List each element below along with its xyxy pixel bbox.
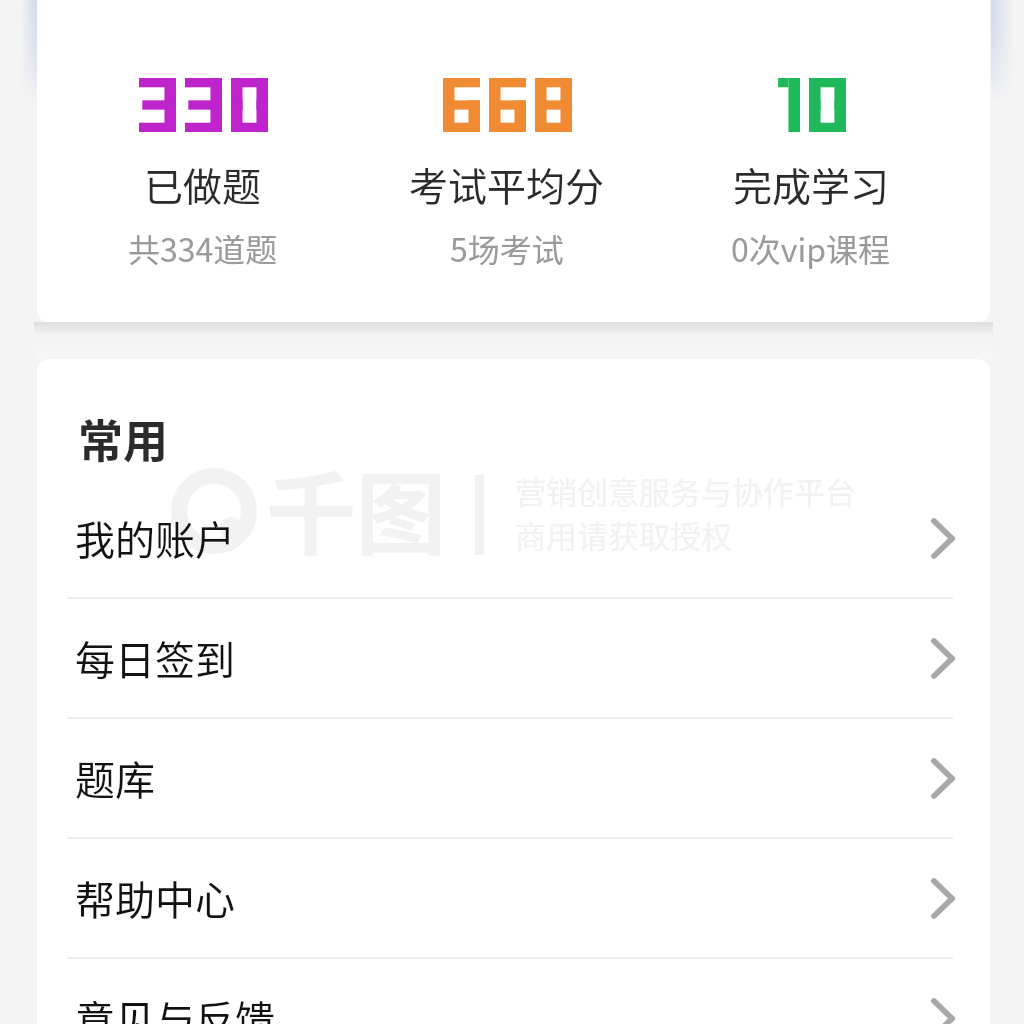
staticText: 题库	[75, 749, 155, 807]
staticText: 0次vip课程	[731, 225, 891, 271]
staticText: 商用请获取授权	[515, 512, 732, 557]
button[interactable]: 每日签到	[37, 599, 990, 717]
staticText: 已做题	[144, 156, 262, 212]
other: 每日签到	[931, 638, 955, 679]
button[interactable]: 意见与反馈	[37, 959, 990, 1024]
button[interactable]: 完成学习	[659, 78, 963, 271]
staticText: 帮助中心	[75, 869, 235, 927]
staticText: 共334道题	[128, 225, 278, 271]
button[interactable]: 我的账户	[37, 479, 990, 597]
staticText: 意见与反馈	[75, 989, 275, 1024]
other: 意见与反馈	[931, 998, 955, 1024]
staticText: 我的账户	[75, 509, 235, 567]
other: 我的账户	[931, 518, 955, 559]
button[interactable]: 已做题	[51, 78, 355, 271]
staticText: 常用	[78, 406, 169, 471]
other: 题库	[931, 758, 955, 799]
staticText: 千图	[266, 443, 446, 573]
button[interactable]: 题库	[37, 719, 990, 837]
button[interactable]: 考试平均分	[355, 78, 659, 271]
other: 帮助中心	[931, 878, 955, 919]
staticText: 考试平均分	[409, 156, 605, 212]
button[interactable]: 帮助中心	[37, 839, 990, 957]
staticText: 营销创意服务与协作平台	[515, 468, 856, 513]
staticText: 5场考试	[450, 225, 564, 271]
staticText: 每日签到	[75, 629, 235, 687]
staticText: 完成学习	[733, 156, 890, 212]
